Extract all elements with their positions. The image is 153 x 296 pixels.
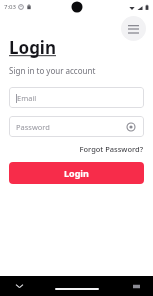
button[interactable]: Email [9, 87, 144, 108]
button[interactable]: Back [12, 279, 26, 293]
button[interactable]: Password [9, 116, 144, 137]
staticText: Sign in to your account [9, 65, 96, 76]
button[interactable]: Forgot Password? [78, 142, 144, 156]
staticText: Login [64, 167, 89, 179]
button[interactable]: Login [9, 162, 144, 184]
button[interactable]: Show password [125, 121, 137, 133]
staticText: Login [9, 36, 57, 59]
button[interactable]: Switch keyboard [129, 279, 143, 293]
staticText: Password [16, 122, 50, 132]
staticText: Email [17, 93, 37, 103]
button[interactable]: Home [55, 288, 99, 290]
staticText: 7:03 [4, 3, 16, 11]
button[interactable]: Menu [121, 16, 146, 41]
staticText: Forgot Password? [79, 144, 143, 154]
